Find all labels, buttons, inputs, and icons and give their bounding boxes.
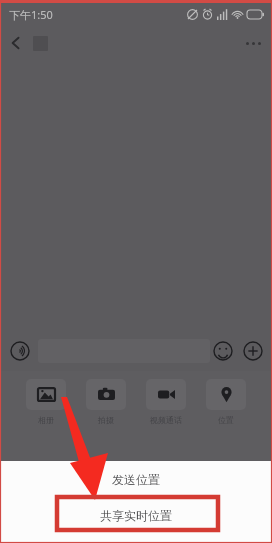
- button[interactable]: 相册: [26, 379, 66, 425]
- staticText: 共享实时位置: [100, 508, 172, 523]
- staticText: 位置: [218, 415, 234, 425]
- button[interactable]: 视频通话: [146, 379, 186, 425]
- button[interactable]: Emoji: [209, 337, 237, 365]
- staticText: 视频通话: [150, 415, 182, 425]
- button[interactable]: 共享实时位置: [0, 497, 272, 533]
- staticText: 下午1:50: [9, 7, 53, 22]
- button[interactable]: 拍摄: [86, 379, 126, 425]
- staticText: 相册: [38, 415, 54, 425]
- button[interactable]: More options: [238, 28, 268, 58]
- staticText: 拍摄: [98, 415, 114, 425]
- button[interactable]: Add attachment: [239, 337, 267, 365]
- button[interactable]: Voice input: [5, 336, 35, 366]
- staticText: 发送位置: [112, 472, 160, 487]
- button[interactable]: 位置: [206, 379, 246, 425]
- button[interactable]: 发送位置: [0, 461, 272, 497]
- button[interactable]: Back: [2, 29, 30, 57]
